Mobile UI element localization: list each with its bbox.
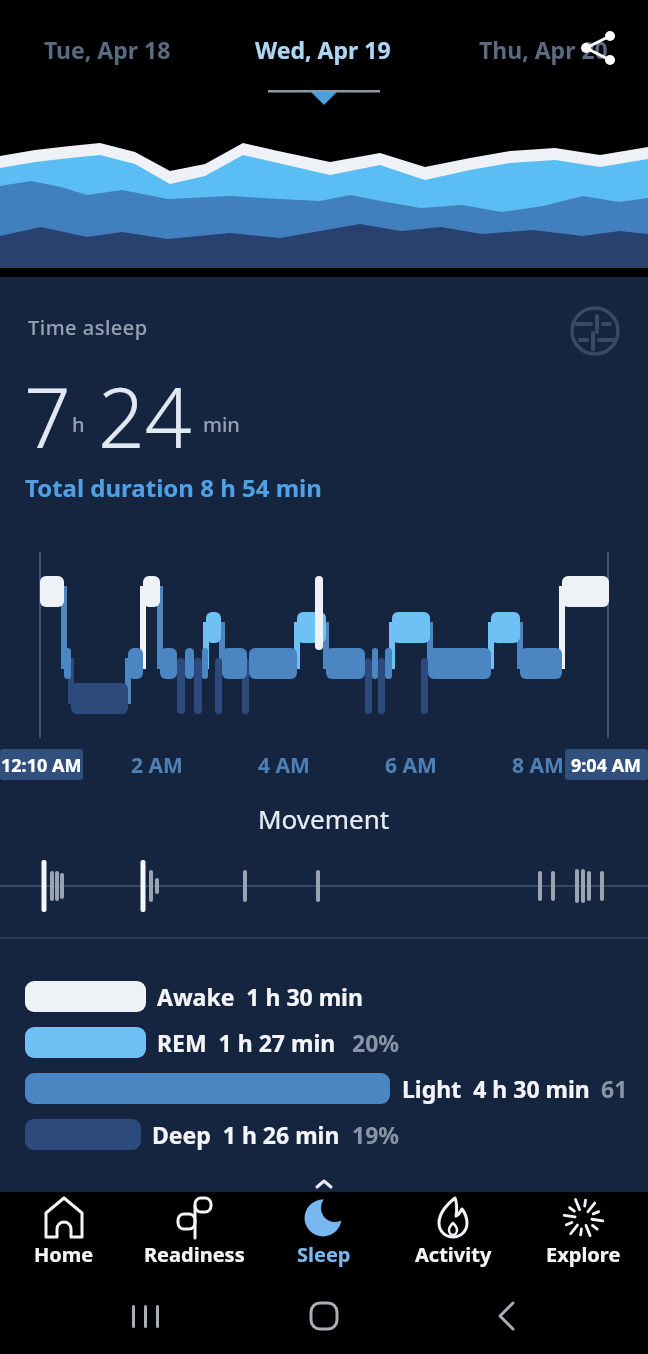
staticText: Activity — [415, 1241, 492, 1268]
staticText: REM 1 h 27 min — [157, 1027, 336, 1058]
button[interactable] — [570, 22, 630, 78]
staticText: 12:10 AM — [1, 753, 82, 778]
staticText: h — [72, 411, 85, 438]
button[interactable] — [477, 1292, 537, 1342]
staticText: 61 — [601, 1073, 628, 1104]
button[interactable]: Thu, Apr 20 — [453, 26, 633, 72]
staticText: Explore — [546, 1241, 621, 1268]
staticText: Movement — [258, 801, 390, 836]
staticText: Home — [34, 1241, 94, 1268]
staticText: Deep 1 h 26 min — [152, 1119, 340, 1150]
staticText: 19% — [352, 1119, 400, 1150]
button[interactable]: Readiness — [132, 1196, 256, 1280]
staticText: 8 AM — [512, 751, 564, 780]
staticText: Thu, Apr 20 — [479, 34, 608, 65]
button[interactable]: Home — [2, 1196, 126, 1280]
staticText: Total duration 8 h 54 min — [25, 471, 322, 504]
staticText: Awake 1 h 30 min — [157, 981, 363, 1012]
staticText: 7 — [24, 360, 71, 450]
staticText: Readiness — [144, 1241, 245, 1268]
button[interactable]: Sleep — [262, 1196, 386, 1280]
staticText: 9:04 AM — [571, 753, 642, 778]
staticText: 24 — [98, 360, 192, 450]
button[interactable] — [294, 1292, 354, 1342]
button[interactable]: Explore — [521, 1196, 645, 1280]
staticText: Time asleep — [28, 314, 148, 341]
staticText: 6 AM — [385, 751, 437, 780]
staticText: Light 4 h 30 min — [402, 1073, 590, 1104]
staticText: Sleep — [297, 1241, 351, 1268]
staticText: 4 AM — [258, 751, 310, 780]
button[interactable]: Wed, Apr 19 — [233, 26, 413, 72]
staticText: 20% — [352, 1027, 400, 1058]
button[interactable]: Tue, Apr 18 — [17, 26, 197, 72]
button[interactable] — [568, 304, 624, 360]
staticText: Wed, Apr 19 — [255, 34, 391, 65]
staticText: min — [203, 411, 240, 438]
staticText: Tue, Apr 18 — [44, 34, 171, 65]
button[interactable]: Activity — [391, 1196, 515, 1280]
staticText: 2 AM — [131, 751, 183, 780]
button[interactable] — [115, 1292, 175, 1342]
